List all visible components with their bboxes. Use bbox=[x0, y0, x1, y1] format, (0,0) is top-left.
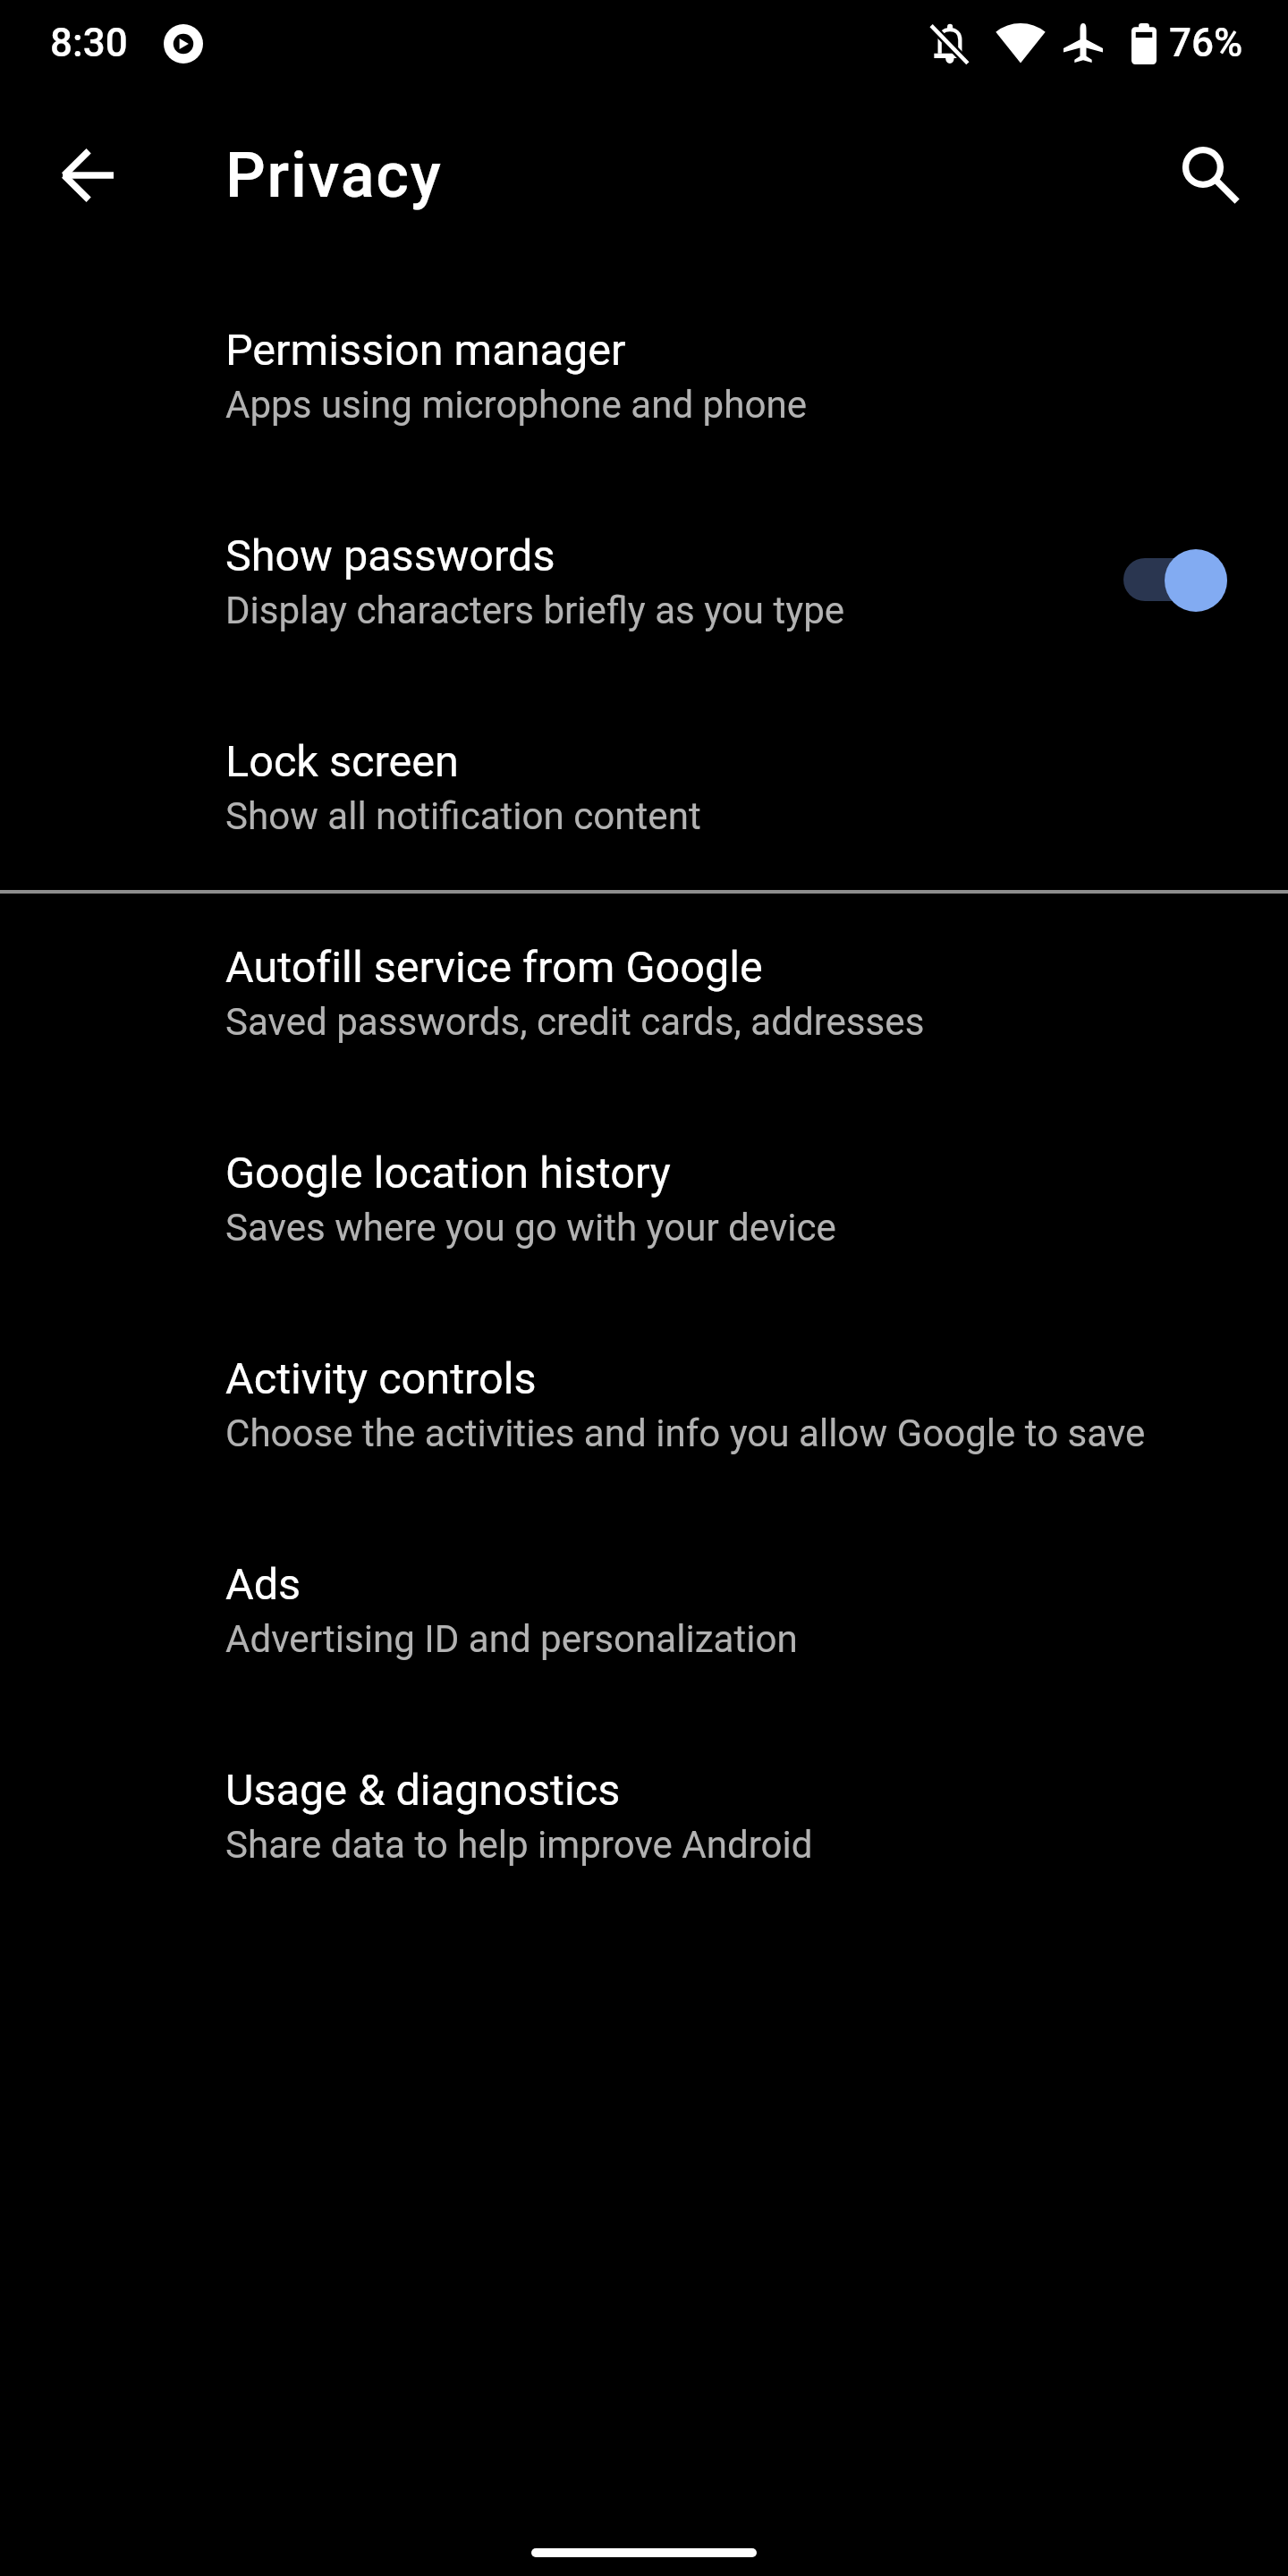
button[interactable]: Permission manager bbox=[0, 325, 1288, 530]
button[interactable]: Autofill service from Google bbox=[0, 942, 1288, 1148]
staticText: Permission manager bbox=[225, 325, 626, 376]
button[interactable]: Search bbox=[1148, 113, 1274, 238]
staticText: Lock screen bbox=[225, 736, 459, 787]
button[interactable]: Navigate up bbox=[25, 113, 150, 238]
staticText: Saved passwords, credit cards, addresses bbox=[225, 1000, 925, 1044]
staticText: Usage & diagnostics bbox=[225, 1765, 621, 1816]
staticText: Activity controls bbox=[225, 1353, 537, 1404]
button[interactable]: Activity controls bbox=[0, 1353, 1288, 1559]
staticText: Advertising ID and personalization bbox=[225, 1617, 798, 1661]
button[interactable]: Show passwords bbox=[0, 530, 1288, 736]
staticText: Display characters briefly as you type bbox=[225, 589, 845, 632]
button[interactable]: Ads bbox=[0, 1559, 1288, 1765]
staticText: 76% bbox=[1169, 20, 1243, 66]
staticText: Ads bbox=[225, 1559, 301, 1610]
staticText: Saves where you go with your device bbox=[225, 1206, 836, 1250]
staticText: Share data to help improve Android bbox=[225, 1823, 813, 1867]
staticText: Google location history bbox=[225, 1148, 671, 1199]
staticText: Apps using microphone and phone bbox=[225, 383, 807, 427]
staticText: 8:30 bbox=[50, 20, 128, 66]
button[interactable]: Google location history bbox=[0, 1148, 1288, 1353]
button[interactable]: Usage & diagnostics bbox=[0, 1765, 1288, 1970]
staticText: Show all notification content bbox=[225, 794, 701, 838]
staticText: Show passwords bbox=[225, 530, 555, 581]
staticText: Autofill service from Google bbox=[225, 942, 763, 993]
staticText: Privacy bbox=[225, 139, 443, 212]
button[interactable]: Lock screen bbox=[0, 736, 1288, 942]
staticText: Choose the activities and info you allow… bbox=[225, 1411, 1146, 1455]
